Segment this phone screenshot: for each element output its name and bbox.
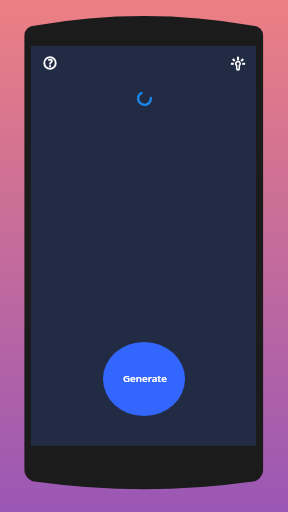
staticText: Generate xyxy=(123,372,167,385)
button[interactable]: Generate xyxy=(103,342,185,416)
staticText: ? xyxy=(48,56,53,70)
button[interactable]: Hint xyxy=(226,52,250,76)
button[interactable]: Help xyxy=(38,51,62,75)
